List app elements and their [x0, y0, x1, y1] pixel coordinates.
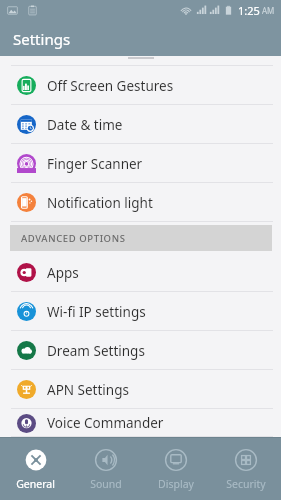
staticText: Apps: [47, 264, 79, 282]
staticText: Finger Scanner: [47, 155, 143, 173]
button[interactable]: Finger Scanner: [0, 144, 281, 183]
staticText: Settings: [13, 29, 71, 49]
staticText: Voice Commander: [47, 414, 164, 432]
staticText: Notification light: [47, 194, 153, 212]
staticText: 1:25: [238, 3, 260, 18]
staticText: Security: [226, 477, 266, 491]
button[interactable]: Off Screen Gestures: [0, 66, 281, 105]
staticText: Off Screen Gestures: [47, 77, 174, 95]
button[interactable]: APN Settings: [0, 370, 281, 409]
staticText: APN Settings: [47, 381, 129, 399]
staticText: ADVANCED OPTIONS: [21, 232, 126, 245]
button[interactable]: Sound: [71, 438, 141, 500]
staticText: Dream Settings: [47, 342, 145, 360]
staticText: General: [16, 477, 55, 491]
staticText: Wi-fi IP settings: [47, 303, 146, 321]
staticText: AM: [262, 5, 275, 16]
button[interactable]: Date & time: [0, 105, 281, 144]
button[interactable]: Notification light: [0, 183, 281, 222]
button[interactable]: Security: [211, 438, 281, 500]
staticText: Sound: [90, 477, 122, 491]
button[interactable]: Apps: [0, 253, 281, 292]
button[interactable]: Dream Settings: [0, 331, 281, 370]
button[interactable]: Wi-fi IP settings: [0, 292, 281, 331]
button[interactable]: Display: [141, 438, 211, 500]
button[interactable]: General: [0, 438, 71, 500]
staticText: Date & time: [47, 116, 123, 134]
staticText: Display: [158, 477, 194, 491]
button[interactable]: Voice Commander: [0, 409, 281, 437]
